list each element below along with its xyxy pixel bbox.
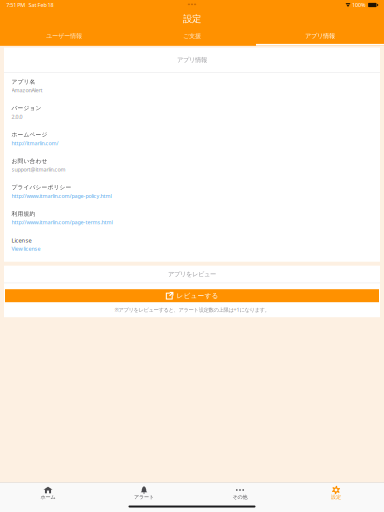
staticText: 100% (352, 1, 366, 9)
button[interactable]: レビューする (5, 289, 379, 302)
staticText: 設定 (331, 494, 341, 500)
staticText: http://itmarlin.com/ (11, 139, 58, 147)
button[interactable]: ホーム (0, 483, 96, 501)
button[interactable]: バージョン (4, 99, 380, 126)
staticText: アプリ情報 (305, 32, 335, 40)
button[interactable]: お問い合わせ (4, 152, 380, 178)
button[interactable]: 利用規約 (4, 205, 380, 231)
staticText: http://www.itmarlin.com/page-policy.html (11, 192, 111, 200)
button[interactable]: ユーザー情報 (0, 28, 128, 46)
staticText: Sat Feb 18 (28, 1, 53, 9)
button[interactable]: アプリ名 (4, 73, 380, 99)
staticText: その他 (232, 494, 247, 500)
button[interactable]: その他 (192, 483, 288, 501)
staticText: License (11, 236, 31, 244)
staticText: AmazonAlert (11, 87, 42, 94)
staticText: ユーザー情報 (46, 32, 82, 40)
button[interactable]: ホームページ (4, 126, 380, 152)
staticText: 2.0.0 (11, 113, 22, 120)
button[interactable]: 設定 (288, 483, 384, 501)
staticText: ※アプリをレビューすると、アラート設定数の上限は+1になります。 (114, 306, 269, 313)
button[interactable]: アプリ情報 (256, 28, 384, 46)
staticText: 設定 (183, 13, 201, 25)
staticText: View license (11, 245, 40, 252)
staticText: 7:51 PM (6, 1, 25, 9)
staticText: 利用規約 (11, 210, 35, 217)
staticText: バージョン (11, 105, 41, 112)
staticText: アプリをレビュー (168, 270, 216, 278)
staticText: support@itmarlin.com (11, 166, 65, 173)
staticText: ホーム (40, 494, 55, 500)
staticText: アプリ名 (11, 78, 35, 85)
staticText: http://www.itmarlin.com/page-terms.html (11, 219, 112, 226)
staticText: アラート (134, 494, 154, 500)
button[interactable]: ご支援 (128, 28, 256, 46)
staticText: ホームページ (11, 131, 47, 138)
button[interactable]: License (4, 231, 380, 258)
staticText: ご支援 (183, 32, 201, 40)
button[interactable]: プライバシーポリシー (4, 178, 380, 205)
staticText: お問い合わせ (11, 157, 47, 165)
staticText: レビューする (176, 291, 218, 300)
button[interactable]: アラート (96, 483, 192, 501)
staticText: アプリ情報 (177, 56, 207, 64)
staticText: プライバシーポリシー (11, 184, 71, 191)
